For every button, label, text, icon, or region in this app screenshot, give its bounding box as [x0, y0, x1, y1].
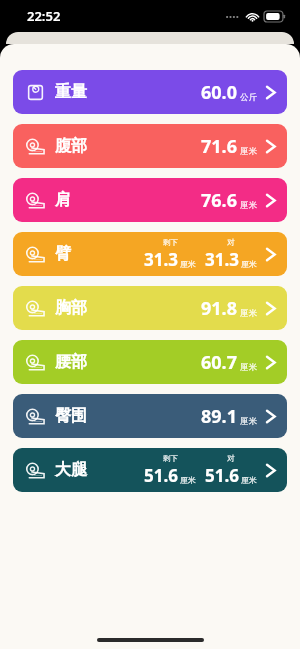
staticText: 对 — [227, 238, 235, 247]
button[interactable]: 腰部 — [13, 340, 287, 384]
staticText: 大腿 — [55, 460, 87, 480]
staticText: 重量 — [55, 82, 87, 102]
staticText: 胸部 — [55, 298, 87, 318]
button[interactable]: 肩 — [13, 178, 287, 222]
staticText: 51.6 — [144, 464, 178, 487]
button[interactable]: 腹部 — [13, 124, 287, 168]
button[interactable]: 臀围 — [13, 394, 287, 438]
other: Open 重量 — [265, 84, 276, 101]
staticText: 厘米 — [241, 259, 257, 269]
staticText: 89.1 — [201, 404, 237, 429]
other: Open 腹部 — [265, 138, 276, 155]
staticText: 厘米 — [240, 200, 257, 211]
staticText: 对 — [227, 454, 235, 463]
other: Open 大腿 — [265, 462, 276, 479]
button[interactable]: 胸部 — [13, 286, 287, 330]
staticText: 31.3 — [205, 248, 239, 271]
staticText: 91.8 — [201, 296, 237, 321]
staticText: 剩下 — [163, 454, 178, 463]
staticText: 臀围 — [55, 406, 87, 426]
staticText: 厘米 — [180, 259, 196, 269]
button[interactable]: 大腿 — [13, 448, 287, 492]
button[interactable]: 臂 — [13, 232, 287, 276]
staticText: 臂 — [55, 244, 71, 264]
other: Open 腰部 — [265, 354, 276, 371]
staticText: 76.6 — [201, 188, 237, 213]
staticText: 剩下 — [163, 238, 178, 247]
staticText: 厘米 — [240, 146, 257, 157]
button[interactable]: 重量 — [13, 70, 287, 114]
staticText: 厘米 — [180, 475, 196, 485]
staticText: 腹部 — [55, 136, 87, 156]
staticText: 肩 — [55, 190, 71, 210]
staticText: 厘米 — [240, 362, 257, 373]
staticText: 公斤 — [240, 92, 257, 103]
staticText: 31.3 — [144, 248, 178, 271]
staticText: 厘米 — [240, 416, 257, 427]
other: Open 胸部 — [265, 300, 276, 317]
staticText: 71.6 — [201, 134, 237, 159]
staticText: 51.6 — [205, 464, 239, 487]
other: Open 肩 — [265, 192, 276, 209]
other: Open 臀围 — [265, 408, 276, 425]
other: Open 臂 — [265, 246, 276, 263]
staticText: 厘米 — [241, 475, 257, 485]
staticText: 腰部 — [55, 352, 87, 372]
staticText: 60.7 — [201, 350, 237, 375]
staticText: 60.0 — [201, 80, 237, 105]
staticText: 22:52 — [27, 7, 61, 25]
staticText: 厘米 — [240, 308, 257, 319]
